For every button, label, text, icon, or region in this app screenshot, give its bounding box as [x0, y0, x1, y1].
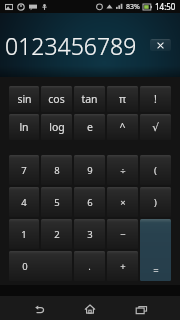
staticText: 8: [54, 164, 60, 177]
staticText: log: [49, 120, 65, 134]
button[interactable]: log: [41, 114, 72, 140]
button[interactable]: π: [107, 86, 138, 112]
staticText: 0123456789: [5, 30, 137, 61]
staticText: sin: [17, 92, 32, 106]
button[interactable]: 9: [74, 155, 105, 185]
button[interactable]: +: [107, 251, 138, 281]
staticText: ): [154, 196, 157, 209]
button[interactable]: √: [140, 114, 171, 140]
button[interactable]: 4: [9, 187, 39, 217]
staticText: ×: [120, 196, 126, 209]
button[interactable]: 8: [41, 155, 72, 185]
button[interactable]: Recents: [124, 296, 158, 320]
staticText: 6: [87, 196, 93, 209]
staticText: 3: [87, 228, 93, 241]
button[interactable]: Home: [73, 296, 107, 320]
button[interactable]: cos: [41, 86, 72, 112]
button[interactable]: ln: [9, 114, 39, 140]
staticText: 0: [22, 260, 28, 273]
staticText: −: [120, 228, 126, 241]
button[interactable]: (: [140, 155, 171, 185]
staticText: 9: [87, 164, 93, 177]
staticText: +: [120, 260, 126, 273]
button[interactable]: ): [140, 187, 171, 217]
button[interactable]: Back: [22, 296, 56, 320]
staticText: cos: [48, 92, 65, 106]
staticText: ^: [119, 120, 126, 134]
button[interactable]: 1: [9, 219, 39, 249]
button[interactable]: ^: [107, 114, 138, 140]
staticText: ln: [19, 120, 29, 134]
button[interactable]: =: [140, 219, 171, 281]
button[interactable]: !: [140, 86, 171, 112]
staticText: ÷: [120, 164, 126, 177]
button[interactable]: ÷: [107, 155, 138, 185]
staticText: 7: [21, 164, 27, 177]
button[interactable]: 6: [74, 187, 105, 217]
staticText: 83%: [126, 2, 140, 12]
button[interactable]: 7: [9, 155, 39, 185]
staticText: 14:50: [155, 1, 176, 12]
staticText: tan: [81, 92, 98, 106]
button[interactable]: .: [74, 251, 105, 281]
staticText: π: [119, 92, 126, 106]
button[interactable]: tan: [74, 86, 105, 112]
staticText: 1: [21, 228, 27, 241]
staticText: (: [154, 164, 157, 177]
staticText: 5: [54, 196, 60, 209]
button[interactable]: 5: [41, 187, 72, 217]
button[interactable]: 0: [9, 251, 72, 281]
button[interactable]: Clear: [150, 39, 171, 51]
staticText: e: [87, 120, 93, 134]
staticText: !: [154, 92, 157, 106]
button[interactable]: ×: [107, 187, 138, 217]
button[interactable]: sin: [9, 86, 39, 112]
button[interactable]: 2: [41, 219, 72, 249]
staticText: 4: [21, 196, 27, 209]
staticText: √: [152, 121, 159, 133]
button[interactable]: e: [74, 114, 105, 140]
button[interactable]: −: [107, 219, 138, 249]
staticText: =: [153, 264, 159, 277]
button[interactable]: 3: [74, 219, 105, 249]
staticText: 2: [54, 228, 60, 241]
staticText: .: [88, 260, 91, 273]
